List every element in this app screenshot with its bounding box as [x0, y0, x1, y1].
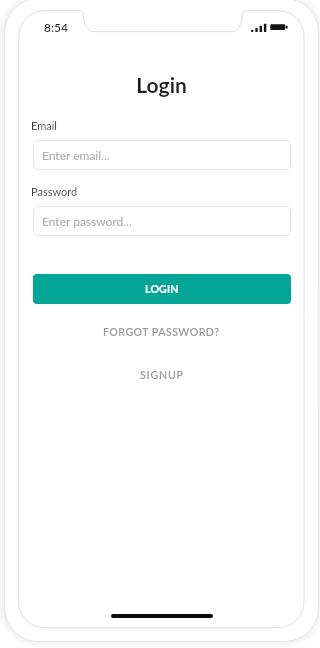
staticText: Password [31, 185, 78, 198]
staticText: Enter password... [42, 214, 132, 228]
staticText: Login [19, 72, 304, 97]
button[interactable]: SIGNUP [19, 360, 304, 390]
staticText: LOGIN [145, 283, 179, 296]
staticText: SIGNUP [140, 369, 184, 382]
staticText: Enter email... [42, 148, 110, 162]
button[interactable]: LOGIN [33, 274, 291, 304]
button[interactable]: Enter email... [33, 140, 291, 170]
staticText: Email [31, 119, 57, 132]
staticText: FORGOT PASSWORD? [103, 326, 220, 339]
staticText: 8:54 [44, 20, 68, 34]
button[interactable]: Enter password... [33, 206, 291, 236]
button[interactable]: FORGOT PASSWORD? [19, 317, 304, 347]
other: Signal and battery status [251, 23, 291, 32]
